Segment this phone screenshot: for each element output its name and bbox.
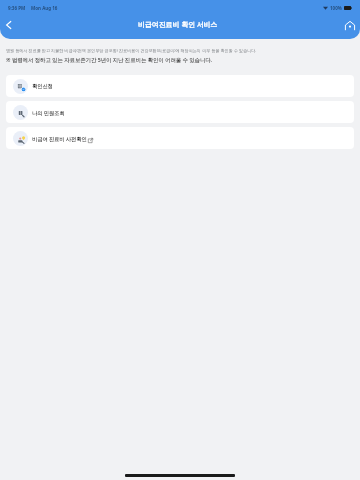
staticText: 확인신청 bbox=[32, 83, 53, 90]
staticText: 비급여 진료비 사전확인 bbox=[32, 135, 87, 142]
button[interactable]: Back bbox=[1, 17, 17, 33]
button[interactable]: 비급여 진료비 사전확인 bbox=[6, 127, 354, 149]
button[interactable]: 나의 민원조회 bbox=[6, 101, 354, 123]
staticText: 나의 민원조회 bbox=[32, 109, 65, 116]
staticText: 9:36 PM bbox=[8, 5, 26, 11]
staticText: 비급여진료비 확인 서비스 bbox=[138, 20, 218, 29]
staticText: Mon Aug 16 bbox=[31, 5, 58, 11]
button[interactable]: Home bbox=[341, 16, 359, 34]
staticText: 100% bbox=[330, 5, 342, 11]
button[interactable]: 확인신청 bbox=[6, 75, 354, 97]
staticText: ※ 법령에서 정하고 있는 자료보존기간 5년이 지난 진료비는 확인이 어려울… bbox=[6, 56, 213, 63]
staticText: 병원 등에서 진료를 받고 지불한 비급여(전액 본인부담 금포함) 진료비용이… bbox=[6, 48, 257, 54]
